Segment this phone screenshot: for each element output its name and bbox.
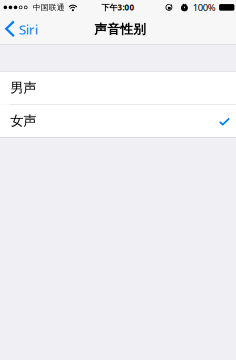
staticText: Siri [19, 20, 38, 38]
staticText: 100% [193, 1, 216, 14]
button[interactable]: 男声 [0, 72, 236, 104]
staticText: 男声 [10, 79, 36, 96]
staticText: 下午3:00 [101, 2, 134, 13]
button[interactable]: 女声 [0, 105, 236, 137]
button[interactable]: Siri [0, 15, 42, 43]
staticText: 声音性别 [94, 21, 146, 37]
staticText: 女声 [10, 112, 36, 129]
staticText: 中国联通 [33, 2, 65, 12]
